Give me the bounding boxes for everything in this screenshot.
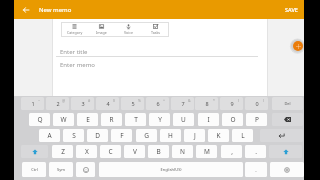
button[interactable]: Backspace [272, 113, 303, 126]
button[interactable]: A [39, 129, 60, 142]
button[interactable]: W [53, 113, 74, 126]
staticText: F [120, 131, 124, 140]
button[interactable]: F [111, 129, 132, 142]
button[interactable]: X [76, 145, 97, 158]
button[interactable]: 2 [46, 97, 69, 110]
staticText: Sym [57, 167, 65, 172]
button[interactable]: G [136, 129, 157, 142]
button[interactable]: 7 [171, 97, 194, 110]
button[interactable]: Shift [269, 145, 302, 158]
staticText: Enter title [60, 48, 88, 56]
button[interactable]: N [172, 145, 193, 158]
staticText: 9 [230, 100, 234, 107]
staticText: ( [238, 98, 240, 103]
button[interactable]: R [101, 113, 122, 126]
button[interactable]: Shift [21, 145, 48, 158]
button[interactable]: I [198, 113, 219, 126]
staticText: , [231, 147, 233, 156]
button[interactable]: Settings [270, 162, 304, 177]
button[interactable]: 1 [21, 97, 44, 110]
staticText: $ [113, 98, 116, 103]
button[interactable]: B [148, 145, 169, 158]
button[interactable]: H [160, 129, 181, 142]
staticText: & [188, 98, 191, 103]
button[interactable]: , [221, 145, 242, 158]
button[interactable]: S [63, 129, 84, 142]
button[interactable]: Q [29, 113, 50, 126]
button[interactable]: Del [272, 97, 303, 110]
staticText: E [86, 115, 90, 124]
button[interactable]: Sym [49, 162, 73, 177]
button[interactable]: P [246, 113, 267, 126]
staticText: J [194, 131, 196, 140]
button[interactable]: Enter [260, 129, 303, 142]
button[interactable]: U [173, 113, 194, 126]
button[interactable]: L [232, 129, 253, 142]
button[interactable]: English(US) [99, 162, 243, 177]
staticText: 4 [106, 100, 110, 107]
staticText: # [88, 98, 91, 103]
staticText: K [216, 131, 221, 140]
staticText: @ [62, 98, 66, 103]
button[interactable]: 8 [195, 97, 218, 110]
button[interactable]: 9 [220, 97, 243, 110]
staticText: N [180, 147, 185, 156]
button[interactable]: . [245, 162, 267, 177]
staticText: 0 [255, 100, 259, 107]
staticText: 6 [156, 100, 160, 107]
staticText: English(US) [160, 167, 182, 172]
staticText: Image [96, 30, 107, 35]
button[interactable]: Z [52, 145, 73, 158]
button[interactable]: Emoji [76, 162, 95, 177]
staticText: Del [284, 101, 291, 106]
button[interactable]: D [87, 129, 108, 142]
button[interactable]: 6 [146, 97, 169, 110]
button[interactable]: K [208, 129, 229, 142]
staticText: 8 [205, 100, 209, 107]
button[interactable]: E [77, 113, 98, 126]
staticText: 5 [131, 100, 135, 107]
button[interactable]: C [100, 145, 121, 158]
staticText: % [138, 98, 141, 103]
button[interactable]: Voice [115, 22, 142, 37]
staticText: Enter memo [60, 61, 95, 69]
staticText: R [109, 115, 114, 124]
button[interactable]: 5 [121, 97, 144, 110]
staticText: X [85, 147, 89, 156]
button[interactable]: Y [149, 113, 170, 126]
staticText: V [133, 147, 137, 156]
button[interactable]: . [245, 145, 266, 158]
staticText: O [230, 115, 236, 124]
staticText: A [47, 131, 52, 140]
staticText: Y [158, 115, 162, 124]
staticText: 2 [56, 100, 60, 107]
button[interactable]: M [196, 145, 217, 158]
button[interactable]: V [124, 145, 145, 158]
button[interactable]: T [125, 113, 146, 126]
button[interactable]: Add [293, 41, 303, 51]
staticText: T [134, 115, 138, 124]
button[interactable]: SAVE [279, 0, 304, 19]
staticText: ~ [38, 98, 41, 103]
button[interactable]: 4 [96, 97, 119, 110]
button[interactable]: Category [61, 22, 88, 37]
staticText: B [156, 147, 161, 156]
button[interactable]: Tasks [142, 22, 169, 37]
button[interactable]: Back [14, 0, 37, 19]
button[interactable]: 3 [71, 97, 94, 110]
staticText: Ctrl [31, 167, 38, 172]
staticText: D [95, 131, 100, 140]
button[interactable]: J [184, 129, 205, 142]
button[interactable]: Image [88, 22, 115, 37]
button[interactable]: 0 [245, 97, 268, 110]
staticText: W [60, 115, 67, 124]
button[interactable]: O [222, 113, 243, 126]
staticText: M [204, 147, 210, 156]
staticText: L [241, 131, 245, 140]
staticText: Voice [124, 30, 133, 35]
staticText: I [207, 115, 210, 124]
staticText: Category [67, 30, 83, 35]
button[interactable]: Ctrl [22, 162, 46, 177]
staticText: H [168, 131, 173, 140]
staticText: 7 [181, 100, 185, 107]
